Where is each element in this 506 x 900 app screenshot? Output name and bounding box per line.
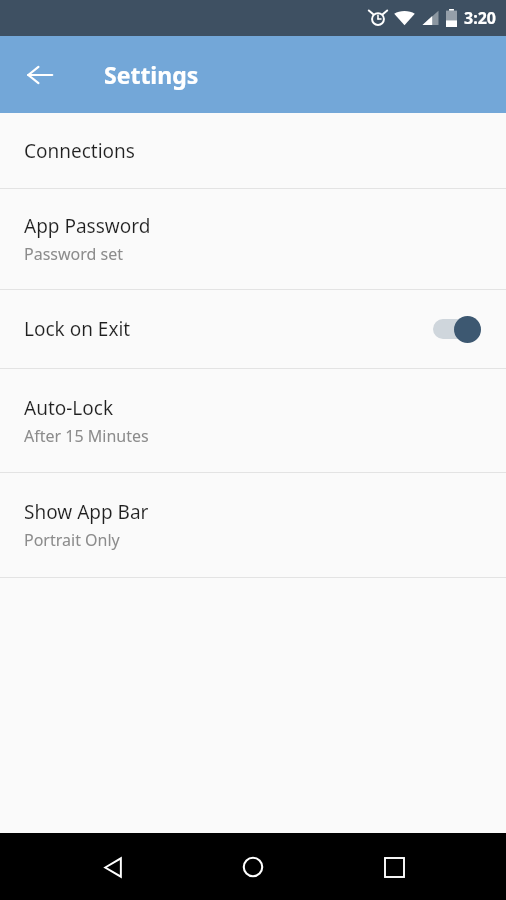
staticText: App Password xyxy=(24,213,151,239)
button[interactable]: Lock on Exit xyxy=(430,312,484,346)
staticText: Settings xyxy=(104,59,199,90)
button[interactable]: Auto-Lock xyxy=(0,369,506,472)
button[interactable]: App Password xyxy=(0,189,506,289)
button[interactable]: Connections xyxy=(0,113,506,188)
staticText: Lock on Exit xyxy=(24,316,131,342)
staticText: Portrait Only xyxy=(24,529,120,551)
staticText: Connections xyxy=(24,138,135,164)
staticText: Show App Bar xyxy=(24,499,149,525)
button[interactable]: Lock on Exit xyxy=(0,290,506,368)
button[interactable]: Back xyxy=(85,839,141,895)
button[interactable]: Show App Bar xyxy=(0,473,506,577)
button[interactable]: Recents xyxy=(366,839,422,895)
staticText: Password set xyxy=(24,243,123,265)
staticText: 3:20 xyxy=(464,7,496,29)
staticText: Auto-Lock xyxy=(24,395,114,421)
button[interactable]: Home xyxy=(225,839,281,895)
staticText: After 15 Minutes xyxy=(24,425,149,447)
button[interactable]: Back xyxy=(12,47,68,103)
